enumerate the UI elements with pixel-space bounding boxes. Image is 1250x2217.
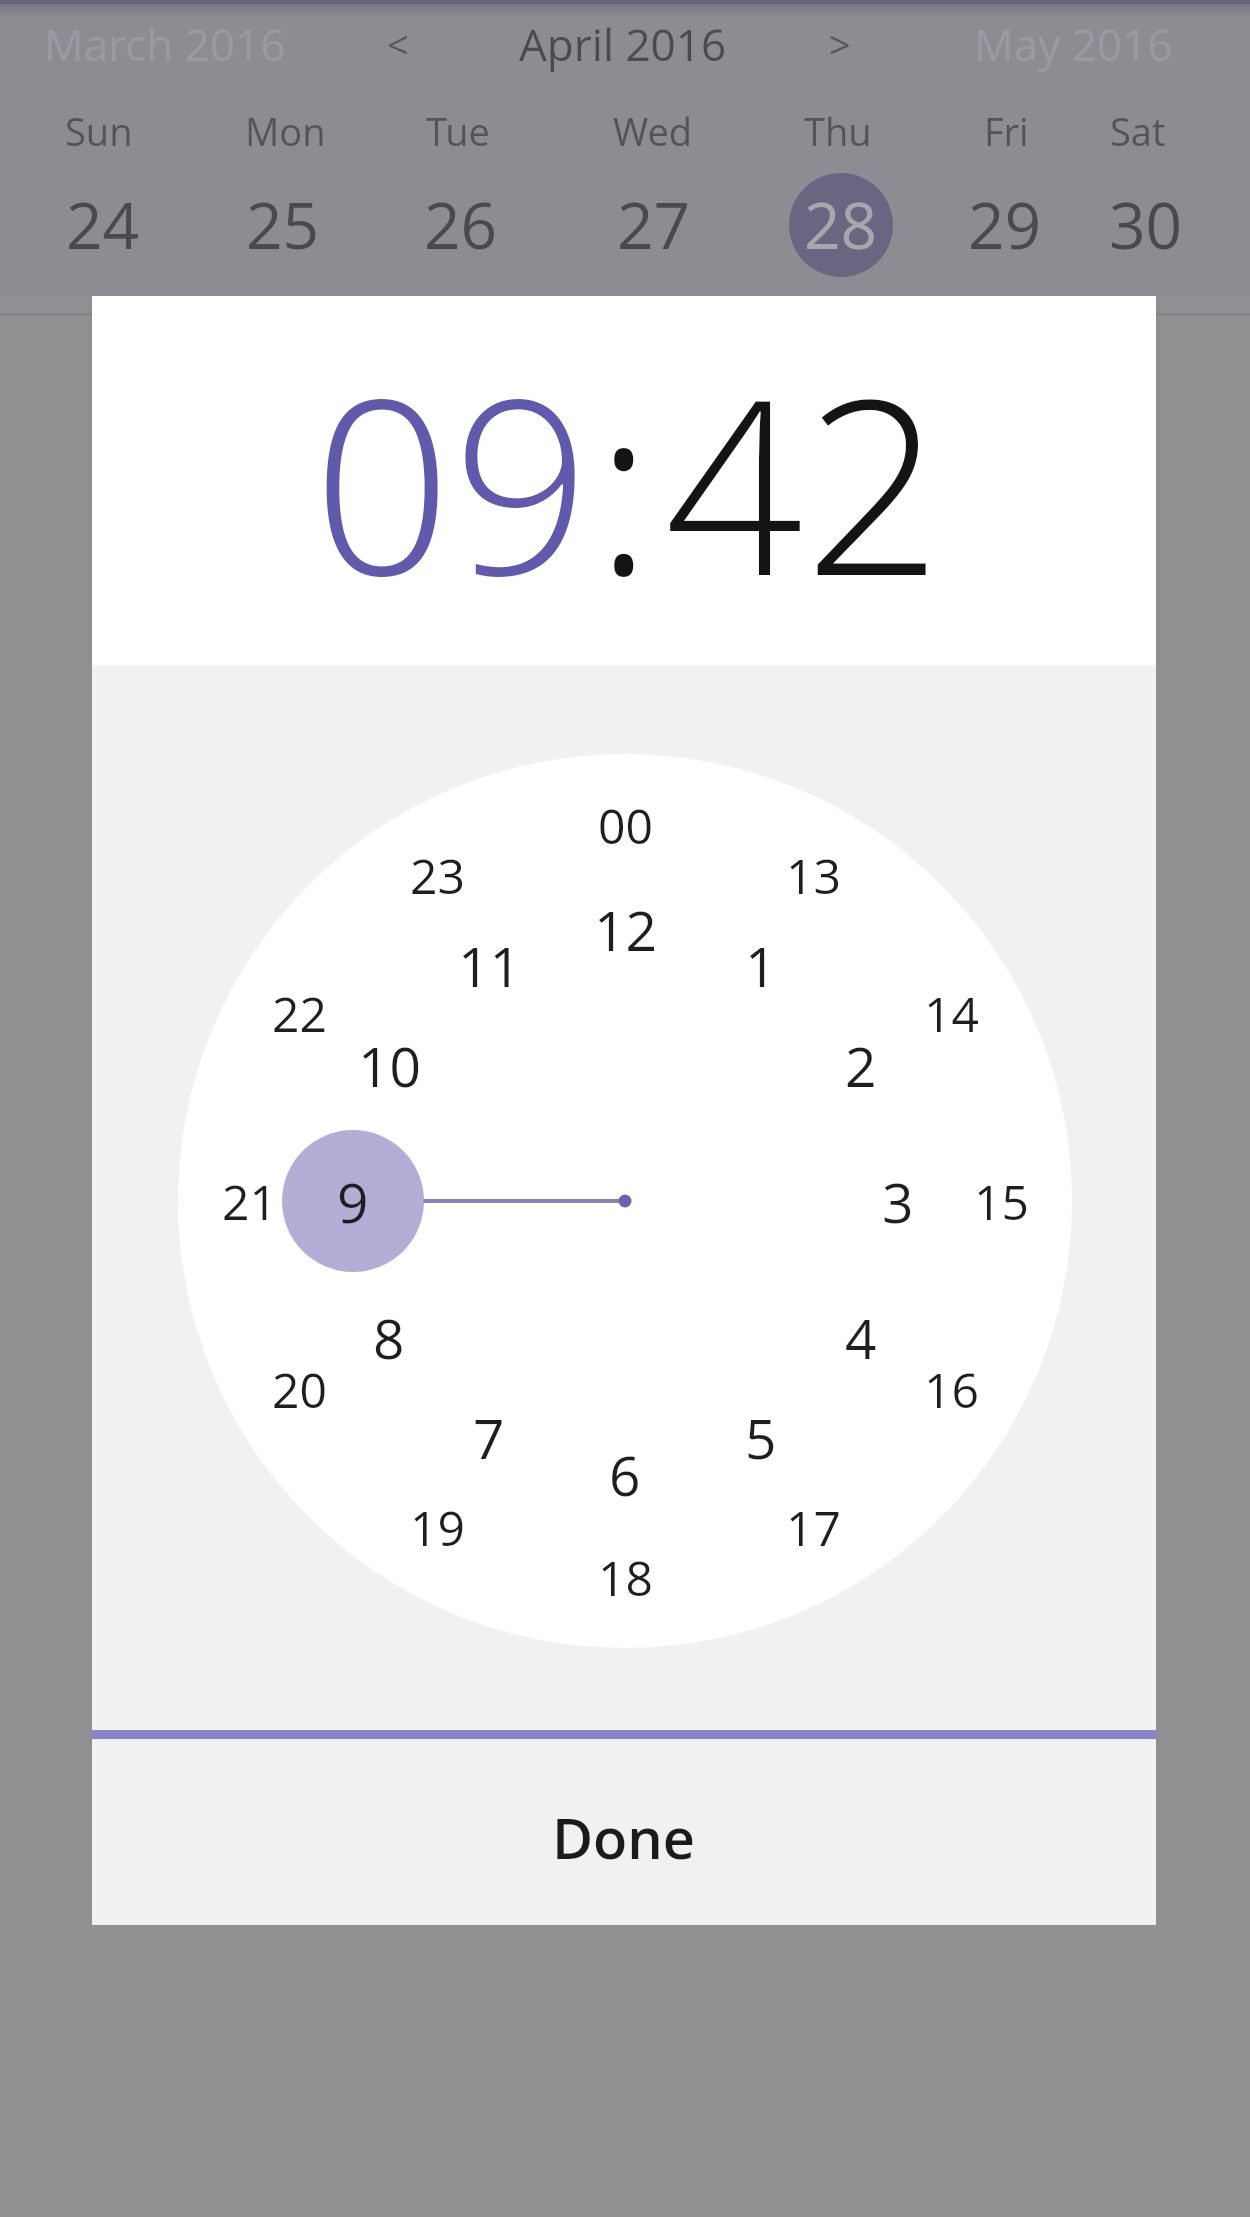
- button[interactable]: 23: [377, 815, 497, 935]
- button[interactable]: 27: [574, 154, 734, 294]
- button[interactable]: 18: [565, 1517, 685, 1637]
- button[interactable]: 10: [329, 1005, 449, 1125]
- staticText: 11: [458, 928, 521, 1003]
- staticText: 4: [845, 1300, 877, 1375]
- staticText: 20: [272, 1357, 327, 1422]
- button[interactable]: 16: [891, 1329, 1011, 1449]
- button[interactable]: 25: [203, 154, 363, 294]
- staticText: 12: [594, 892, 657, 967]
- button[interactable]: 12: [565, 869, 685, 989]
- button[interactable]: >: [690, 0, 990, 119]
- button[interactable]: 1: [701, 905, 821, 1025]
- button[interactable]: 17: [753, 1467, 873, 1587]
- staticText: 9: [337, 1164, 369, 1239]
- staticText: :: [595, 316, 654, 646]
- staticText: Thu: [804, 105, 872, 157]
- staticText: 23: [410, 843, 465, 908]
- staticText: Mon: [245, 105, 326, 157]
- staticText: >: [829, 18, 851, 70]
- staticText: Tue: [426, 105, 490, 157]
- staticText: 27: [617, 181, 691, 268]
- button[interactable]: 19: [377, 1467, 497, 1587]
- staticText: April 2016: [519, 14, 727, 74]
- staticText: 16: [924, 1357, 979, 1422]
- button[interactable]: 9: [293, 1141, 413, 1261]
- staticText: 00: [598, 793, 653, 858]
- staticText: 13: [786, 843, 841, 908]
- staticText: 8: [373, 1300, 405, 1375]
- button[interactable]: 22: [239, 953, 359, 1073]
- staticText: 1: [745, 928, 777, 1003]
- button[interactable]: 28: [761, 154, 921, 294]
- staticText: Sat: [1110, 105, 1166, 157]
- staticText: 26: [424, 181, 498, 268]
- staticText: 6: [609, 1437, 641, 1512]
- staticText: 25: [246, 181, 320, 268]
- button[interactable]: 2: [801, 1005, 921, 1125]
- button[interactable]: 15: [941, 1141, 1061, 1261]
- staticText: 14: [924, 981, 979, 1046]
- button[interactable]: 3: [838, 1141, 958, 1261]
- button[interactable]: 00: [565, 765, 685, 885]
- staticText: 22: [272, 981, 327, 1046]
- button[interactable]: Done: [92, 1739, 1156, 1934]
- button[interactable]: 14: [891, 953, 1011, 1073]
- staticText: 19: [410, 1495, 465, 1560]
- button[interactable]: 21: [189, 1141, 309, 1261]
- staticText: 7: [473, 1400, 505, 1475]
- staticText: Fri: [984, 105, 1029, 157]
- button[interactable]: 8: [329, 1277, 449, 1397]
- staticText: 2: [845, 1028, 877, 1103]
- staticText: 28: [804, 181, 878, 268]
- staticText: 09: [313, 316, 592, 646]
- staticText: Wed: [613, 105, 693, 157]
- button[interactable]: 13: [753, 815, 873, 935]
- button[interactable]: 24: [23, 154, 183, 294]
- staticText: 15: [974, 1169, 1029, 1234]
- staticText: 5: [745, 1400, 777, 1475]
- staticText: 10: [358, 1028, 421, 1103]
- staticText: Sun: [65, 105, 133, 157]
- staticText: 42: [665, 316, 944, 646]
- staticText: 3: [882, 1164, 914, 1239]
- button[interactable]: 20: [239, 1329, 359, 1449]
- staticText: May 2016: [974, 14, 1173, 74]
- button[interactable]: 7: [429, 1377, 549, 1497]
- button[interactable]: 29: [925, 154, 1085, 294]
- button[interactable]: <: [248, 0, 548, 119]
- staticText: Done: [552, 1799, 696, 1875]
- staticText: 21: [222, 1169, 277, 1234]
- staticText: 29: [968, 181, 1042, 268]
- staticText: 24: [66, 181, 140, 268]
- button[interactable]: 11: [429, 905, 549, 1025]
- staticText: 30: [1109, 181, 1183, 268]
- button[interactable]: 26: [381, 154, 541, 294]
- button[interactable]: 30: [1066, 154, 1226, 294]
- staticText: 17: [786, 1495, 841, 1560]
- button[interactable]: 6: [565, 1414, 685, 1534]
- button[interactable]: 5: [701, 1377, 821, 1497]
- staticText: March 2016: [44, 14, 286, 74]
- staticText: 18: [598, 1545, 653, 1610]
- button[interactable]: 4: [801, 1277, 921, 1397]
- staticText: <: [387, 18, 409, 70]
